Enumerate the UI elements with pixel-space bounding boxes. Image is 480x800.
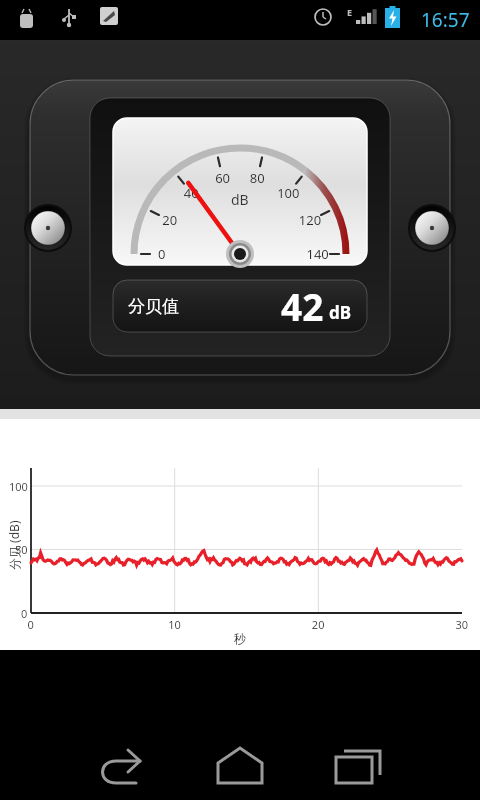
button[interactable]: Recent apps	[330, 735, 390, 795]
button[interactable]: Back	[90, 735, 150, 795]
button[interactable]: Home	[210, 735, 270, 795]
